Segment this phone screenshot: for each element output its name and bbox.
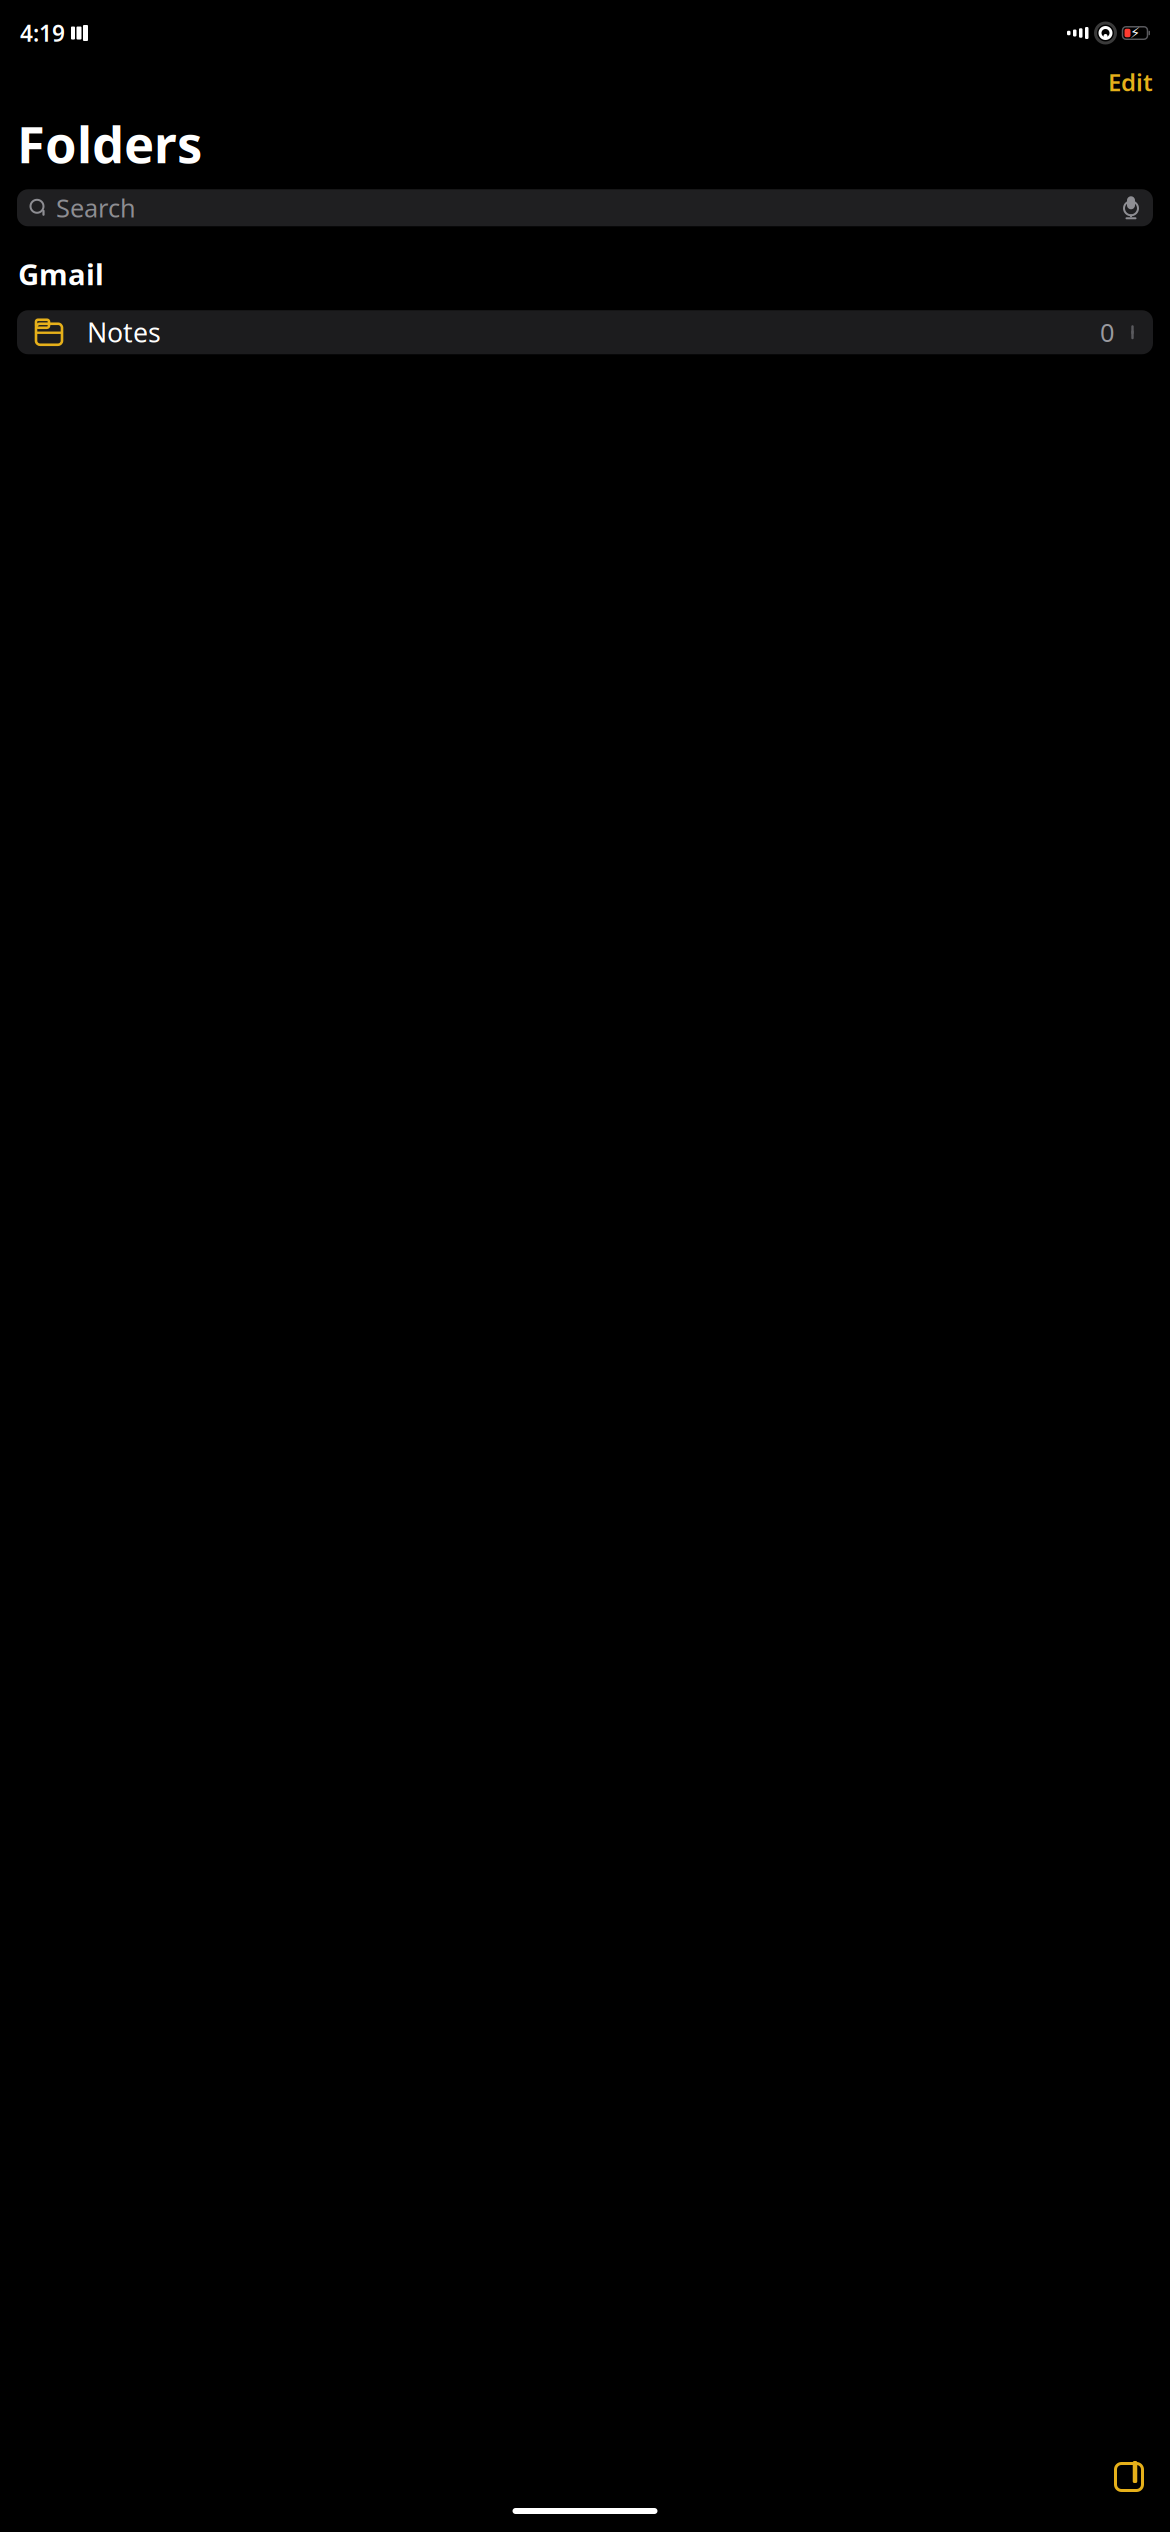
staticText: ⚡︎	[1130, 25, 1140, 41]
staticText: Edit	[1108, 66, 1153, 98]
button[interactable]: Search	[17, 189, 1153, 226]
staticText: Notes	[87, 314, 161, 350]
staticText: Gmail	[18, 254, 104, 293]
staticText: Folders	[17, 110, 202, 177]
button[interactable]: Notes	[17, 310, 1153, 354]
staticText: 0	[1100, 315, 1114, 349]
button[interactable]: Edit	[1102, 60, 1159, 104]
staticText: Search	[56, 191, 136, 225]
staticText: 4:19	[20, 18, 65, 48]
button[interactable]: New Note	[1100, 2448, 1162, 2502]
